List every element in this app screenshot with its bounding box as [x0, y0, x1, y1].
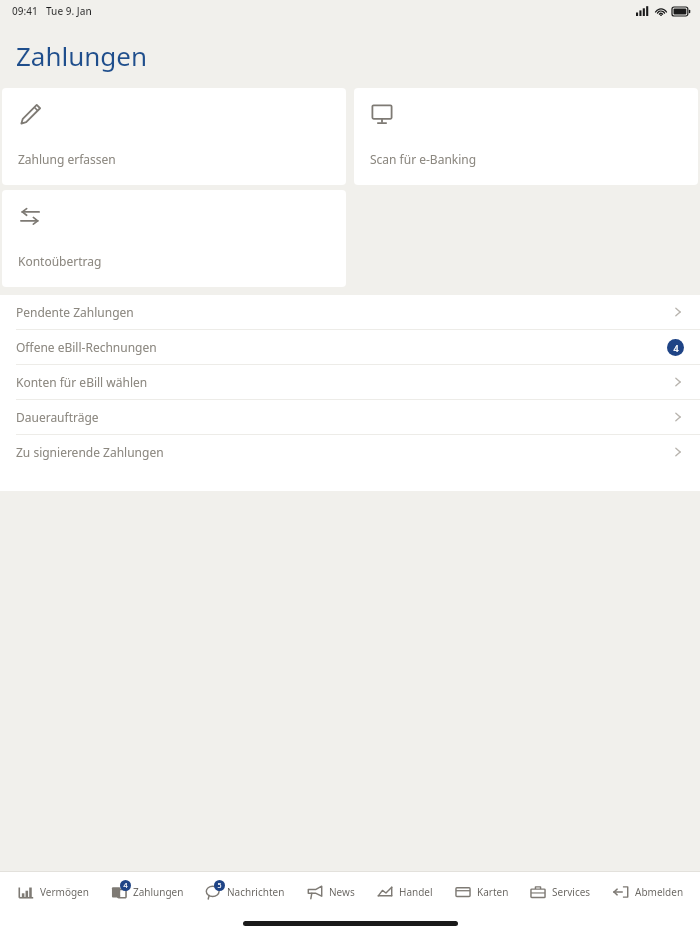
button[interactable]: Daueraufträge	[0, 400, 700, 434]
staticText: Pendente Zahlungen	[16, 304, 134, 320]
staticText: Kontoübertrag	[18, 253, 102, 269]
button[interactable]: Abmelden	[607, 872, 688, 912]
staticText: Offene eBill-Rechnungen	[16, 339, 157, 355]
button[interactable]: Offene eBill-Rechnungen	[0, 330, 700, 364]
button[interactable]: Vermögen	[12, 872, 93, 912]
button[interactable]: Zu signierende Zahlungen	[0, 435, 700, 469]
staticText: Zu signierende Zahlungen	[16, 444, 164, 460]
staticText: 09:41	[12, 4, 38, 18]
button[interactable]: 5	[199, 872, 289, 912]
staticText: Daueraufträge	[16, 409, 99, 425]
staticText: Vermögen	[40, 885, 89, 899]
staticText: Zahlungen	[133, 885, 184, 899]
staticText: 4	[123, 881, 128, 891]
staticText: Zahlungen	[16, 38, 148, 73]
staticText: Karten	[477, 885, 509, 899]
button[interactable]: Konten für eBill wählen	[0, 365, 700, 399]
staticText: 5	[217, 881, 222, 891]
staticText: 4	[673, 342, 679, 354]
button[interactable]: Services	[524, 872, 595, 912]
button[interactable]: Kontoübertrag	[2, 190, 346, 287]
staticText: Handel	[399, 885, 433, 899]
button[interactable]: 4	[105, 872, 188, 912]
staticText: Services	[552, 885, 591, 899]
staticText: Abmelden	[635, 885, 684, 899]
staticText: Scan für e-Banking	[370, 151, 477, 167]
staticText: Nachrichten	[227, 885, 285, 899]
staticText: Zahlung erfassen	[18, 151, 116, 167]
button[interactable]: Handel	[371, 872, 437, 912]
button[interactable]: Karten	[449, 872, 513, 912]
staticText: Konten für eBill wählen	[16, 374, 148, 390]
staticText: News	[329, 885, 355, 899]
staticText: Tue 9. Jan	[46, 4, 92, 18]
button[interactable]: News	[301, 872, 359, 912]
button[interactable]: Pendente Zahlungen	[0, 295, 700, 329]
button[interactable]: Scan für e-Banking	[354, 88, 698, 185]
button[interactable]: Zahlung erfassen	[2, 88, 346, 185]
